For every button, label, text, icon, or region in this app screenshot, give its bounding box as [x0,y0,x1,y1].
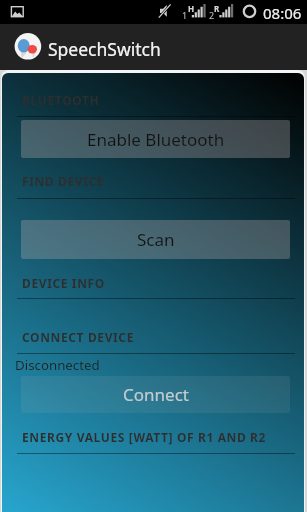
button[interactable]: Connect [21,376,290,413]
staticText: 1 [182,9,188,21]
staticText: CONNECT DEVICE [22,329,135,345]
button[interactable]: Scan [21,220,290,259]
staticText: Connect [123,383,189,406]
button[interactable]: Enable Bluetooth [21,120,290,158]
staticText: FIND DEVICE [22,173,105,189]
staticText: Enable Bluetooth [87,128,225,151]
staticText: 2 [209,9,215,21]
staticText: ENERGY VALUES [WATT] OF R1 AND R2 [22,429,267,445]
staticText: H [188,3,195,14]
staticText: DEVICE INFO [22,275,105,291]
staticText: SpeechSwitch [48,37,161,61]
staticText: Scan [137,228,175,251]
staticText: Disconnected [15,356,100,374]
staticText: R [214,3,220,14]
staticText: BLUETOOTH [22,92,100,108]
staticText: 08:06 [263,3,302,23]
